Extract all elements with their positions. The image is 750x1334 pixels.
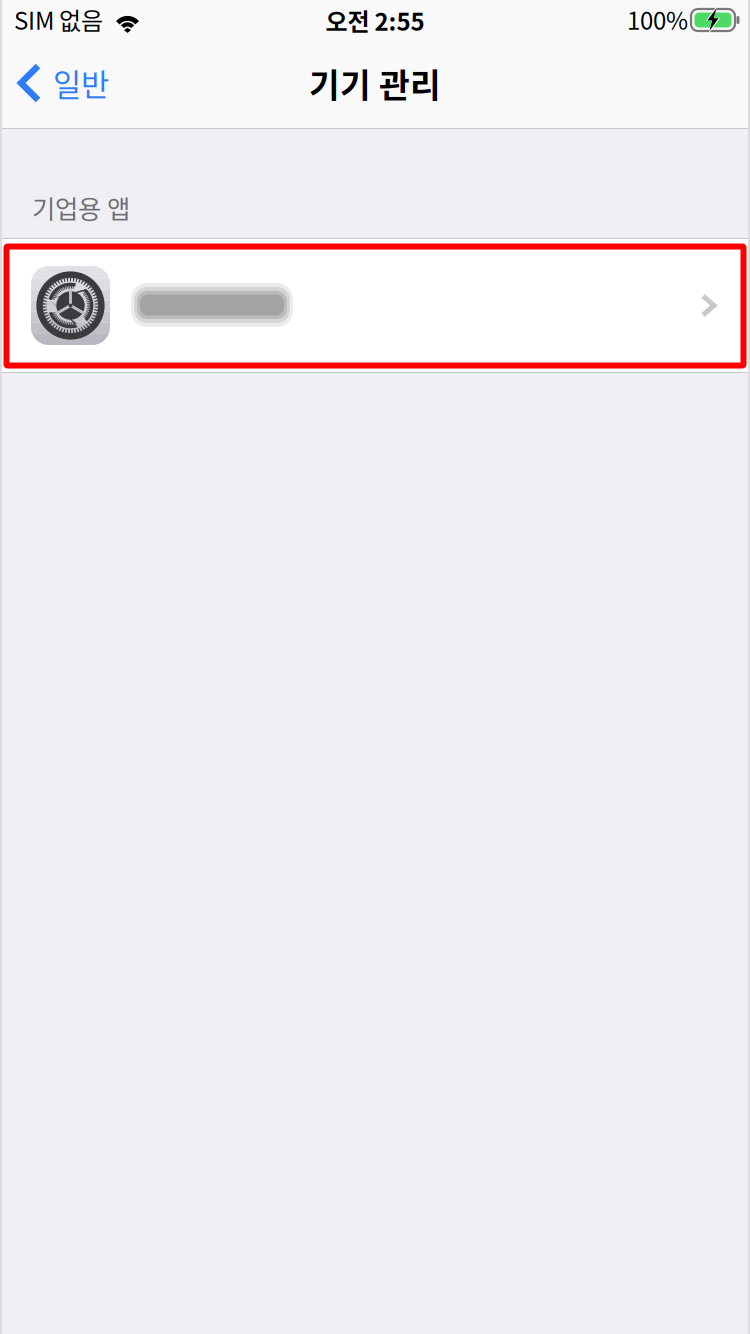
staticText: 기기 관리 [309, 59, 441, 107]
staticText: 100% [627, 2, 688, 37]
button[interactable] [0, 239, 750, 372]
staticText: 일반 [53, 61, 109, 105]
staticText: 오전 2:55 [325, 3, 424, 38]
staticText: 기업용 앱 [32, 189, 130, 226]
button[interactable]: 일반 [0, 48, 190, 118]
staticText: SIM 없음 [14, 2, 103, 37]
